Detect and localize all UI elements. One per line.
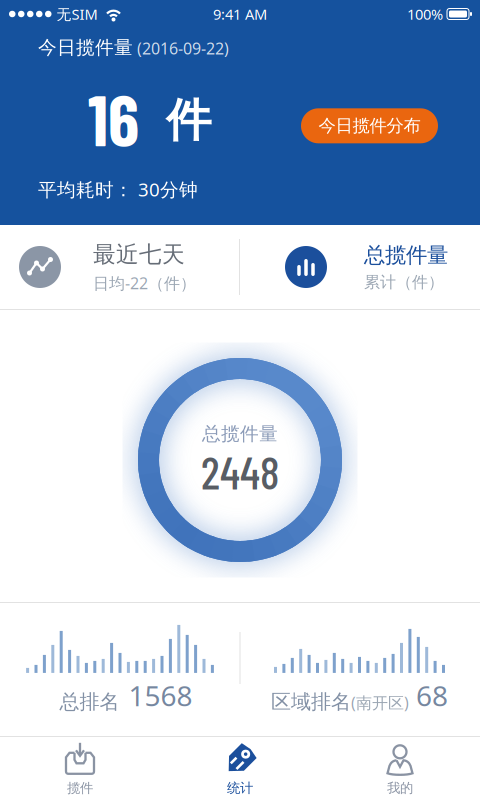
staticText: 平均耗时： 30分钟 (38, 177, 198, 202)
staticText: 统计 (227, 780, 253, 796)
button[interactable]: 我的 (320, 737, 480, 800)
staticText: 总揽件量 (364, 242, 448, 268)
staticText: (南开区) (351, 692, 409, 713)
staticText: 累计（件） (364, 272, 444, 292)
staticText: 总揽件量 (202, 422, 278, 445)
button[interactable]: 总揽件量 (240, 225, 480, 309)
staticText: 68 (409, 677, 448, 714)
button[interactable]: 揽件 (0, 737, 160, 800)
staticText: 9:41 AM (213, 4, 267, 24)
staticText: 我的 (387, 780, 413, 796)
button[interactable]: 统计 (160, 737, 320, 800)
staticText: 100% (407, 4, 443, 24)
staticText: 揽件 (67, 780, 93, 796)
staticText: 件 (166, 93, 211, 148)
staticText: (2016-09-22) (137, 38, 229, 59)
staticText: 今日揽件分布 (318, 115, 420, 136)
staticText: 无SIM (56, 4, 97, 24)
button[interactable]: 最近七天 (0, 225, 239, 309)
staticText: 16 (88, 75, 139, 160)
staticText: 2448 (201, 444, 279, 499)
staticText: 总排名 (59, 689, 119, 714)
staticText: 区域排名 (271, 689, 351, 714)
staticText: 1568 (128, 677, 192, 714)
staticText: 最近七天 (93, 240, 185, 268)
staticText: 日均-22（件） (93, 272, 196, 293)
button[interactable]: 今日揽件分布 (301, 108, 438, 143)
staticText: 今日揽件量 (38, 36, 133, 59)
